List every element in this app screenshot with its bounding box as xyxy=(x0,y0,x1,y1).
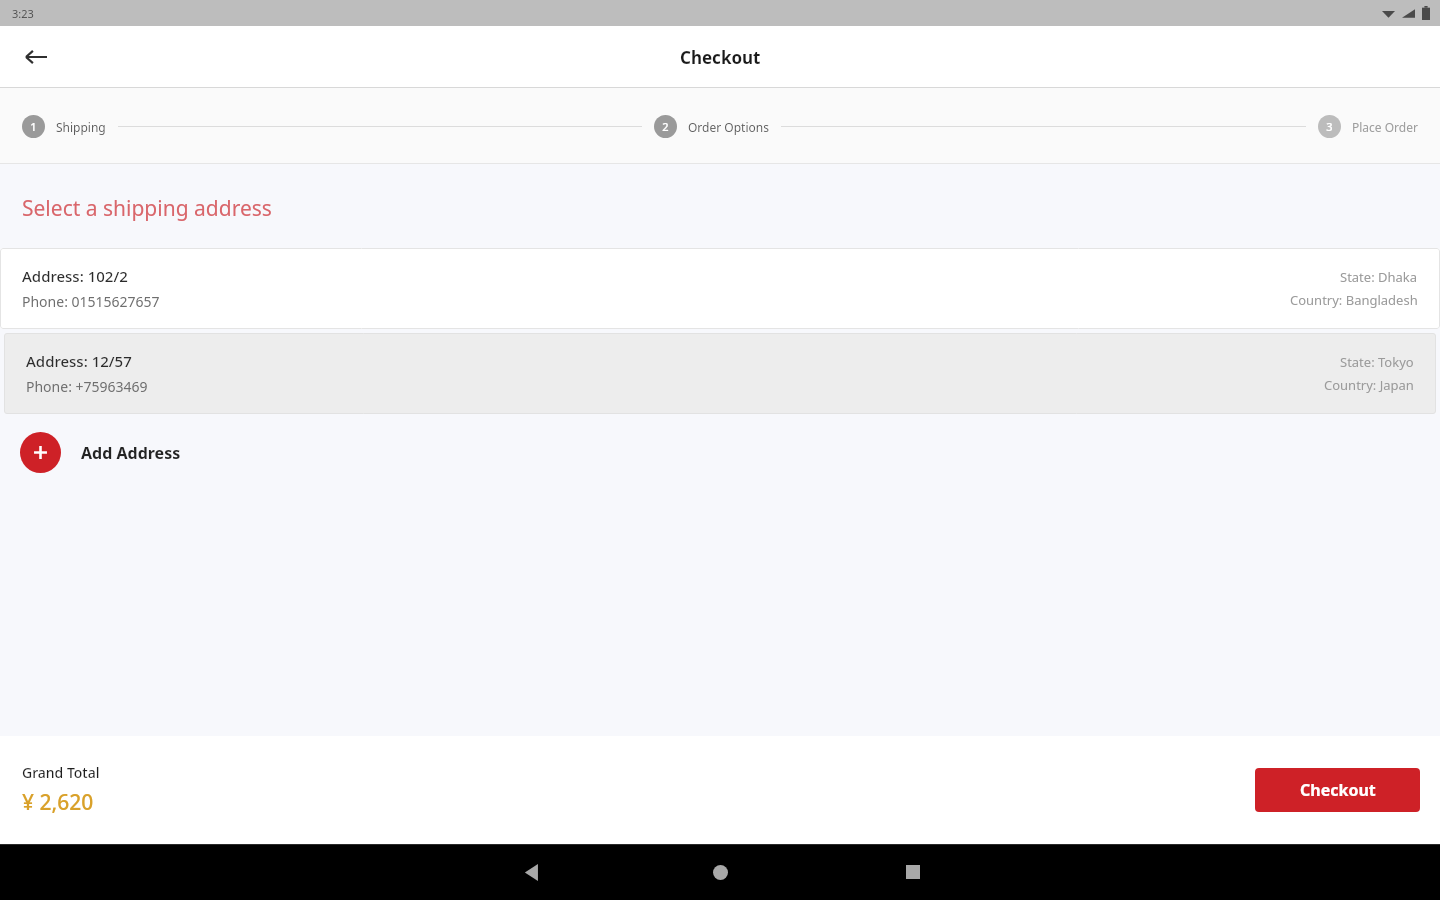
staticText: ¥ 2,620 xyxy=(22,788,94,817)
staticText: Select a shipping address xyxy=(22,194,272,223)
button[interactable]: 2 xyxy=(654,115,769,138)
button[interactable]: Checkout xyxy=(1255,768,1420,812)
button[interactable]: Address: 12/57 xyxy=(4,333,1436,414)
staticText: Address: 102/2 xyxy=(22,266,128,286)
staticText: Country: Japan xyxy=(1324,376,1414,394)
staticText: Shipping xyxy=(56,119,106,135)
staticText: Checkout xyxy=(680,46,761,69)
button[interactable]: Back xyxy=(510,850,554,894)
staticText: Address: 12/57 xyxy=(26,351,132,371)
staticText: Grand Total xyxy=(22,763,100,782)
staticText: Order Options xyxy=(688,119,769,135)
staticText: 3 xyxy=(1326,119,1333,134)
button[interactable]: Recent apps xyxy=(891,850,935,894)
button[interactable]: 3 xyxy=(1318,115,1418,138)
staticText: Country: Bangladesh xyxy=(1290,291,1418,309)
staticText: State: Dhaka xyxy=(1340,268,1418,286)
button[interactable]: Address: 102/2 xyxy=(0,248,1440,329)
staticText: Phone: 01515627657 xyxy=(22,292,160,311)
staticText: Place Order xyxy=(1352,119,1418,135)
button[interactable]: Back xyxy=(12,33,60,81)
staticText: 1 xyxy=(30,119,37,134)
staticText: State: Tokyo xyxy=(1340,353,1414,371)
staticText: Phone: +75963469 xyxy=(26,377,148,396)
staticText: 3:23 xyxy=(12,6,34,21)
staticText: 2 xyxy=(662,119,669,134)
button[interactable]: Add Address xyxy=(0,414,1440,491)
staticText: Checkout xyxy=(1300,779,1376,801)
staticText: Add Address xyxy=(81,442,181,464)
button[interactable]: Home xyxy=(698,850,742,894)
button[interactable]: 1 xyxy=(22,115,106,138)
